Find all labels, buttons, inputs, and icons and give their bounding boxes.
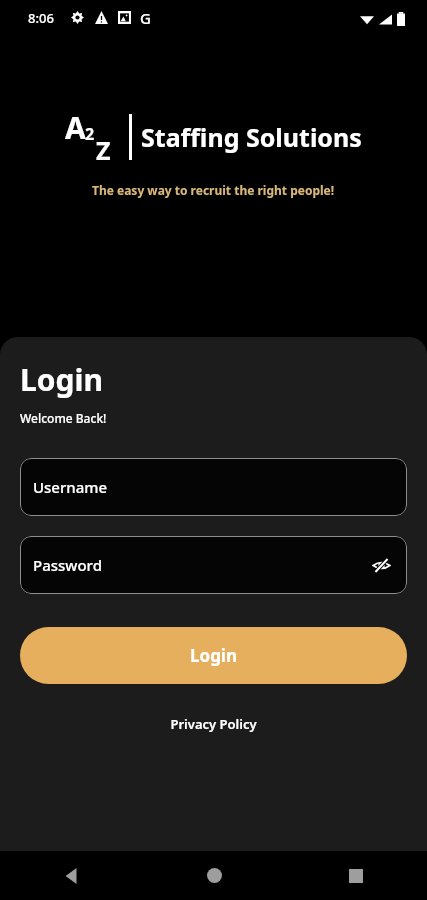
staticText: 2 bbox=[85, 123, 95, 145]
button[interactable]: Home bbox=[143, 851, 285, 900]
staticText: Privacy Policy bbox=[170, 715, 257, 733]
staticText: G bbox=[140, 8, 151, 28]
button[interactable]: Recent apps bbox=[285, 851, 427, 900]
staticText: 8:06 bbox=[28, 9, 54, 27]
staticText: The easy way to recruit the right people… bbox=[92, 182, 335, 198]
staticText: Username bbox=[33, 477, 108, 497]
staticText: Login bbox=[20, 359, 103, 400]
staticText: Login bbox=[190, 644, 238, 667]
button[interactable]: Show password bbox=[366, 550, 397, 581]
staticText: Staffing Solutions bbox=[141, 120, 362, 154]
button[interactable]: Back bbox=[0, 851, 143, 900]
button[interactable]: Login bbox=[20, 627, 407, 684]
button[interactable]: Password bbox=[20, 536, 407, 594]
button[interactable]: Privacy Policy bbox=[162, 711, 265, 737]
button[interactable]: Username bbox=[20, 458, 407, 516]
staticText: A bbox=[65, 107, 86, 148]
staticText: Password bbox=[33, 555, 102, 575]
staticText: Welcome Back! bbox=[20, 410, 107, 426]
staticText: Z bbox=[96, 133, 111, 167]
